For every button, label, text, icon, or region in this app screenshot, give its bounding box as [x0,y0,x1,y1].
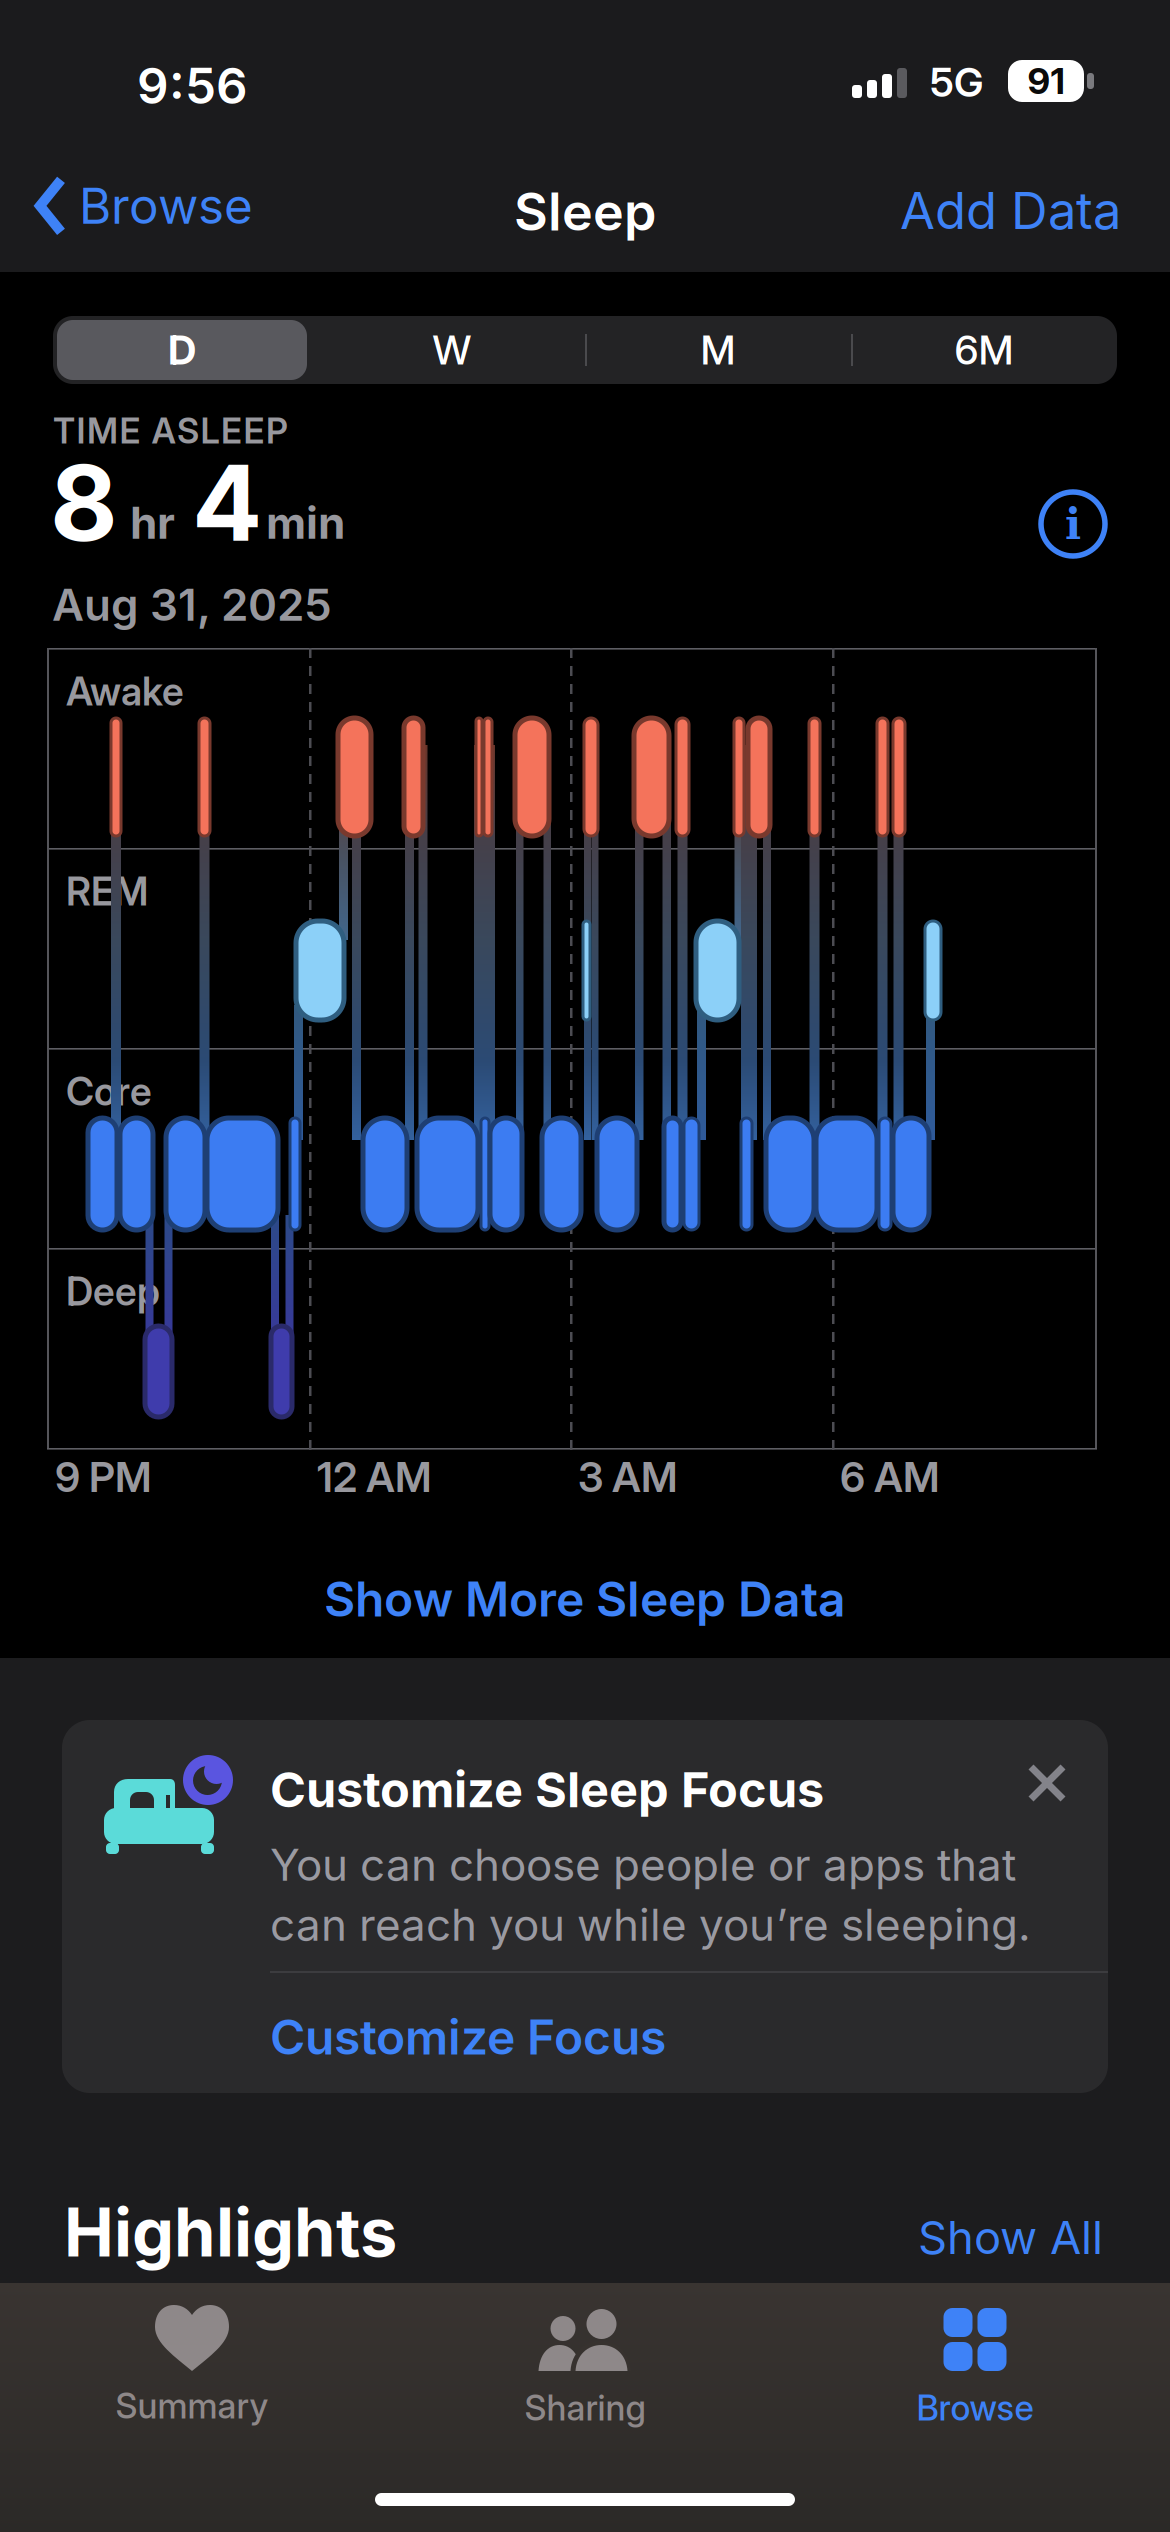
button[interactable]: Customize Focus [270,2008,666,2066]
button[interactable]: 6M [851,316,1117,384]
staticText: Show All [918,2210,1103,2265]
button[interactable]: Add Data [900,180,1121,241]
staticText: Browse [916,2387,1033,2429]
button[interactable]: Browse [36,176,253,236]
staticText: Summary [115,2385,268,2427]
staticText: Sharing [524,2387,645,2429]
button[interactable]: M [585,316,851,384]
staticText: 3 AM [578,1452,678,1502]
button[interactable]: W [319,316,585,384]
button[interactable]: Info [1041,492,1105,556]
staticText: Core [66,1068,152,1115]
staticText: 4 [192,440,262,566]
staticText: TIME ASLEEP [53,410,288,452]
button[interactable]: Browse [855,2308,1095,2429]
staticText: 91 [1027,59,1064,103]
staticText: 9 PM [55,1452,152,1502]
staticText: Browse [79,176,253,236]
button[interactable]: Show More Sleep Data [324,1570,846,1628]
staticText: REM [66,868,148,915]
button[interactable]: D [57,320,307,380]
staticText: 12 AM [317,1452,432,1502]
staticText: Sleep [514,180,656,243]
staticText: Add Data [900,180,1121,241]
button[interactable]: Show All [918,2210,1103,2265]
button[interactable]: Summary [72,2305,312,2427]
staticText: M [700,326,735,374]
button[interactable]: Sharing [465,2307,705,2429]
staticText: Awake [66,668,184,715]
staticText: Show More Sleep Data [324,1570,846,1628]
staticText: 9:56 [137,56,248,116]
staticText: i [1065,499,1081,549]
staticText: Deep [66,1268,160,1315]
staticText: hr [130,496,175,549]
staticText: 6M [954,326,1013,374]
staticText: W [432,326,471,374]
staticText: 8 [50,440,118,566]
staticText: Highlights [64,2192,397,2273]
staticText: 5G [930,58,983,106]
staticText: 6 AM [840,1452,940,1502]
staticText: You can choose people or apps that [270,1838,1016,1891]
staticText: Aug 31, 2025 [52,578,332,631]
staticText: Customize Focus [270,2008,666,2066]
staticText: can reach you while you’re sleeping. [270,1898,1031,1951]
staticText: Customize Sleep Focus [270,1760,824,1819]
staticText: D [168,326,196,374]
staticText: min [266,496,345,549]
button[interactable]: Close [1029,1765,1065,1801]
